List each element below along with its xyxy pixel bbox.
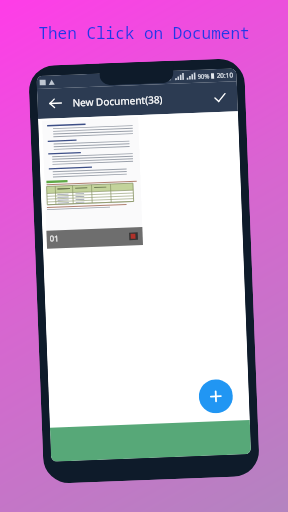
staticText: 20:10: [216, 70, 234, 80]
staticText: 01: [49, 232, 60, 244]
button[interactable]: 01: [42, 117, 143, 249]
staticText: 90%: [197, 72, 210, 81]
button[interactable]: Back: [45, 93, 66, 114]
button[interactable]: Add new document: [198, 379, 233, 414]
button[interactable]: Confirm: [209, 87, 230, 107]
staticText: Then Click on Document: [0, 22, 288, 44]
staticText: New Document(38): [72, 92, 164, 110]
